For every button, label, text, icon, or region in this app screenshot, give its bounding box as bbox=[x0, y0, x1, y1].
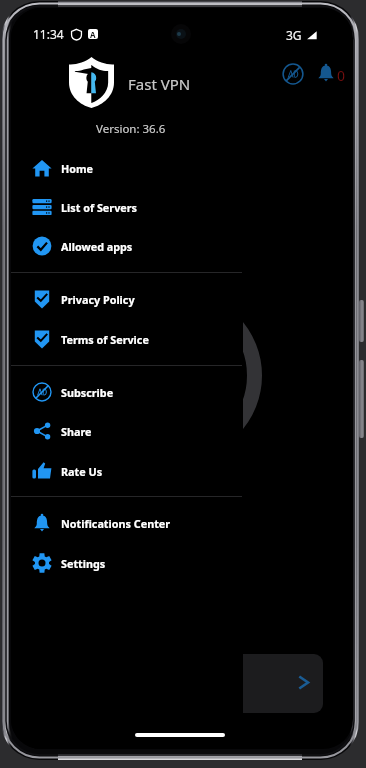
staticText: List of Servers bbox=[61, 200, 137, 215]
staticText: 3G bbox=[286, 27, 302, 43]
button[interactable]: Remove ads bbox=[282, 63, 304, 85]
button[interactable]: Notifications Center bbox=[11, 504, 243, 542]
button[interactable]: Terms of Service bbox=[11, 320, 243, 358]
staticText: Share bbox=[61, 424, 92, 439]
button[interactable]: Notifications bbox=[316, 63, 336, 83]
staticText: Settings bbox=[61, 556, 106, 571]
button[interactable]: Share bbox=[11, 412, 243, 450]
staticText: Fast VPN bbox=[128, 74, 191, 94]
button[interactable]: Settings bbox=[11, 544, 243, 582]
button[interactable]: Open bbox=[242, 654, 323, 713]
button[interactable]: Rate Us bbox=[11, 452, 243, 490]
staticText: 11:34 bbox=[33, 26, 64, 42]
staticText: A bbox=[90, 29, 96, 39]
staticText: Home bbox=[61, 161, 93, 176]
staticText: Version: 36.6 bbox=[96, 121, 166, 137]
staticText: Terms of Service bbox=[61, 332, 149, 347]
staticText: Allowed apps bbox=[61, 239, 133, 254]
staticText: Privacy Policy bbox=[61, 292, 135, 307]
staticText: Subscribe bbox=[61, 385, 114, 400]
staticText: Rate Us bbox=[61, 464, 103, 479]
button[interactable]: Allowed apps bbox=[11, 227, 243, 265]
button[interactable]: Home bbox=[11, 149, 243, 187]
button[interactable]: Privacy Policy bbox=[11, 280, 243, 318]
staticText: 0 bbox=[337, 66, 346, 85]
button[interactable]: Subscribe bbox=[11, 373, 243, 411]
button[interactable]: List of Servers bbox=[11, 188, 243, 226]
staticText: Notifications Center bbox=[61, 516, 171, 531]
